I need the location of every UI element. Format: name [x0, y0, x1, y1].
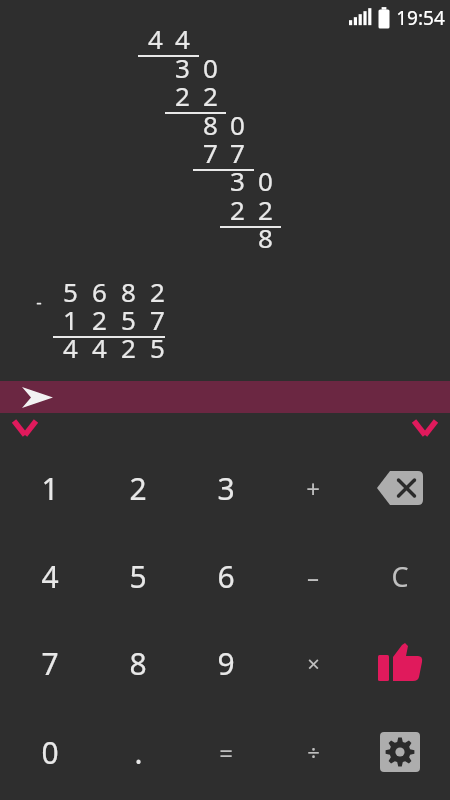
- staticText: 3: [175, 50, 190, 85]
- staticText: -: [36, 290, 42, 313]
- staticText: 4: [175, 21, 190, 56]
- button[interactable]: 8: [94, 619, 182, 707]
- staticText: 9: [217, 643, 235, 684]
- button[interactable]: Backspace: [356, 444, 444, 532]
- button[interactable]: –: [269, 532, 357, 620]
- staticText: 5: [63, 274, 78, 309]
- staticText: =: [219, 736, 233, 769]
- staticText: 0: [203, 50, 218, 85]
- button[interactable]: ÷: [269, 708, 357, 796]
- staticText: 4: [92, 330, 107, 365]
- staticText: 2: [203, 78, 218, 113]
- button[interactable]: 5: [94, 532, 182, 620]
- staticText: 5: [121, 302, 136, 337]
- button[interactable]: 0: [6, 708, 94, 796]
- staticText: 2: [230, 192, 245, 227]
- staticText: 8: [129, 643, 147, 684]
- button[interactable]: 2: [94, 444, 182, 532]
- staticText: 0: [258, 163, 273, 198]
- button[interactable]: C: [356, 532, 444, 620]
- button[interactable]: Scroll down left: [4, 414, 46, 442]
- staticText: 3: [230, 163, 245, 198]
- staticText: –: [307, 560, 319, 593]
- staticText: 4: [41, 556, 59, 597]
- staticText: 5: [150, 330, 165, 365]
- staticText: .: [134, 732, 143, 773]
- staticText: 7: [203, 135, 218, 170]
- staticText: 2: [129, 468, 147, 509]
- staticText: 8: [203, 107, 218, 142]
- staticText: ÷: [307, 737, 320, 767]
- staticText: 8: [258, 220, 273, 255]
- button[interactable]: 9: [182, 619, 270, 707]
- staticText: 7: [41, 643, 59, 684]
- staticText: ×: [307, 648, 320, 678]
- button[interactable]: 3: [182, 444, 270, 532]
- staticText: 4: [148, 21, 163, 56]
- staticText: 2: [92, 302, 107, 337]
- staticText: 8: [121, 274, 136, 309]
- button[interactable]: [0, 381, 450, 413]
- button[interactable]: 7: [6, 619, 94, 707]
- button[interactable]: Check answer: [356, 619, 444, 707]
- button[interactable]: =: [182, 708, 270, 796]
- staticText: 5: [129, 556, 147, 597]
- button[interactable]: +: [269, 444, 357, 532]
- staticText: +: [306, 472, 320, 505]
- staticText: 4: [63, 330, 78, 365]
- staticText: 1: [63, 302, 78, 337]
- staticText: 7: [230, 135, 245, 170]
- button[interactable]: Scroll down right: [404, 414, 446, 442]
- staticText: 2: [121, 330, 136, 365]
- staticText: 6: [92, 274, 107, 309]
- staticText: 0: [41, 732, 59, 773]
- button[interactable]: .: [94, 708, 182, 796]
- staticText: 2: [175, 78, 190, 113]
- staticText: 6: [217, 556, 235, 597]
- button[interactable]: Settings: [356, 708, 444, 796]
- staticText: 3: [217, 468, 235, 509]
- button[interactable]: 4: [6, 532, 94, 620]
- button[interactable]: 1: [6, 444, 94, 532]
- button[interactable]: ×: [269, 619, 357, 707]
- staticText: 7: [150, 302, 165, 337]
- staticText: 2: [150, 274, 165, 309]
- button[interactable]: 6: [182, 532, 270, 620]
- staticText: 1: [41, 468, 59, 509]
- other: Cursor: [20, 385, 54, 409]
- staticText: C: [391, 558, 409, 595]
- staticText: 19:54: [396, 5, 445, 31]
- staticText: 0: [230, 107, 245, 142]
- staticText: 2: [258, 192, 273, 227]
